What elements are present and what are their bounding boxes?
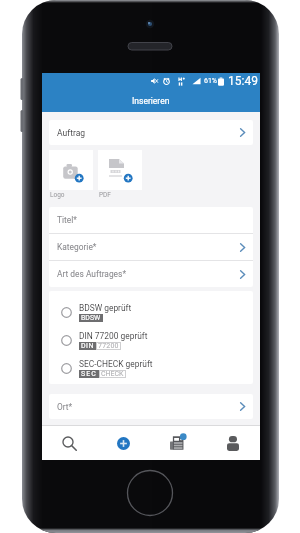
button[interactable]: SEC-CHECK geprüft bbox=[49, 354, 253, 382]
staticText: DIN 77200 geprüft bbox=[79, 331, 148, 341]
staticText: Logo bbox=[50, 191, 65, 199]
staticText: SEC bbox=[81, 370, 97, 378]
staticText: 15:49 bbox=[228, 74, 258, 88]
staticText: DIN bbox=[81, 342, 94, 350]
staticText: Ort* bbox=[57, 402, 73, 412]
staticText: Auftrag bbox=[57, 128, 86, 138]
staticText: Art des Auftrages* bbox=[57, 269, 127, 279]
staticText: Inserieren bbox=[132, 96, 170, 106]
button[interactable]: BDSW geprüft bbox=[49, 298, 253, 326]
staticText: 61% bbox=[204, 77, 217, 85]
button[interactable]: Search bbox=[42, 426, 96, 460]
staticText: BDSW bbox=[81, 314, 101, 322]
staticText: Titel* bbox=[57, 215, 77, 225]
button[interactable]: My ads bbox=[150, 426, 205, 460]
button[interactable]: PDF bbox=[98, 150, 142, 190]
staticText: Kategorie* bbox=[57, 242, 97, 252]
staticText: 77200 bbox=[98, 342, 119, 350]
button[interactable]: Logo bbox=[49, 150, 93, 190]
button[interactable]: Ort* bbox=[49, 394, 253, 419]
button[interactable]: Profile bbox=[205, 426, 260, 460]
button[interactable]: Titel* bbox=[49, 207, 253, 233]
button[interactable]: Art des Auftrages* bbox=[49, 261, 253, 287]
button[interactable]: Auftrag bbox=[49, 120, 253, 145]
button[interactable]: Add bbox=[96, 426, 150, 460]
button[interactable]: Kategorie* bbox=[49, 234, 253, 260]
staticText: BDSW geprüft bbox=[79, 303, 132, 313]
staticText: PDF bbox=[99, 191, 111, 199]
button[interactable]: DIN 77200 geprüft bbox=[49, 326, 253, 354]
staticText: CHECK bbox=[101, 370, 124, 378]
staticText: SEC-CHECK geprüft bbox=[79, 359, 153, 369]
